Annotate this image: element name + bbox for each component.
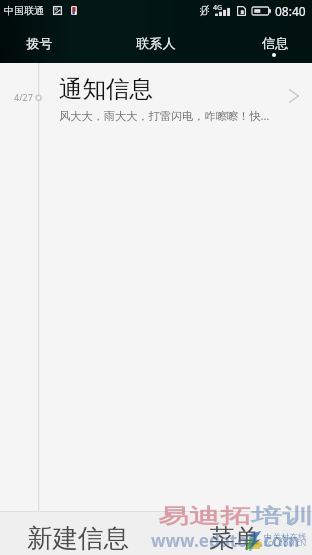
- staticText: 信息: [262, 35, 289, 52]
- staticText: www.edatop.com: [151, 529, 300, 552]
- button[interactable]: 新建信息: [0, 512, 156, 555]
- button[interactable]: 菜单: [156, 512, 312, 555]
- staticText: 培训: [251, 503, 312, 529]
- staticText: 易迪拓: [158, 503, 251, 529]
- staticText: 4/27: [14, 91, 33, 103]
- button[interactable]: 4/27: [0, 63, 312, 131]
- staticText: ZOL.COM.CN: [264, 539, 306, 549]
- other: Open message: [289, 89, 299, 103]
- staticText: 中关村在线: [264, 532, 307, 543]
- staticText: 联系人: [136, 35, 176, 52]
- staticText: 4G: [213, 3, 223, 13]
- staticText: 通知信息: [59, 74, 153, 104]
- button[interactable]: 信息: [223, 17, 312, 62]
- staticText: 中国联通: [4, 4, 44, 17]
- button[interactable]: 联系人: [104, 17, 208, 62]
- staticText: 菜单: [209, 522, 260, 554]
- staticText: 拨号: [26, 35, 53, 52]
- staticText: 新建信息: [27, 522, 129, 554]
- staticText: 风大大，雨大大，打雷闪电，咋嚓嚓！快…: [59, 108, 274, 123]
- button[interactable]: 拨号: [0, 17, 91, 62]
- staticText: 08:40: [275, 3, 306, 19]
